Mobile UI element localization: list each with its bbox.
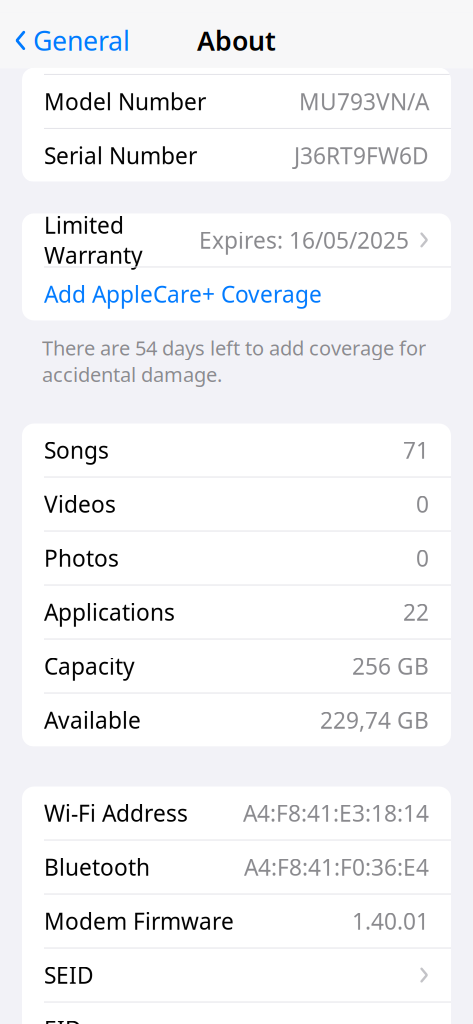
staticText: Serial Number [44,140,197,170]
button[interactable]: Limited Warranty [22,213,451,266]
staticText: General [33,23,130,58]
staticText: A4:F8:41:F0:36:E4 [244,852,429,882]
staticText: EID [44,1014,82,1024]
staticText: 0 [416,543,429,573]
staticText: SEID [44,960,94,990]
staticText: Modem Firmware [44,906,234,936]
staticText: There are 54 days left to add coverage f… [42,334,426,387]
staticText: Songs [44,435,109,465]
button[interactable]: General [0,14,140,67]
staticText: Wi-Fi Address [44,798,188,828]
staticText: MU793VN/A [299,86,429,116]
staticText: 22 [403,597,429,627]
button[interactable]: Add AppleCare+ Coverage [22,267,451,320]
staticText: 1.40.01 [352,906,429,936]
staticText: Capacity [44,651,135,681]
staticText: Add AppleCare+ Coverage [44,279,322,309]
staticText: Expires: 16/05/2025 [199,225,409,255]
staticText: About [197,23,276,58]
staticText: Model Number [44,86,206,116]
staticText: Photos [44,543,119,573]
staticText: Available [44,705,141,735]
staticText: J36RT9FW6D [294,140,429,170]
staticText: Bluetooth [44,852,150,882]
staticText: 71 [403,435,429,465]
staticText: 256 GB [352,651,429,681]
staticText: 229,74 GB [320,705,429,735]
button[interactable]: SEID [22,949,451,1002]
staticText: 0 [416,489,429,519]
staticText: Applications [44,597,175,627]
staticText: Videos [44,489,116,519]
staticText: A4:F8:41:E3:18:14 [243,798,429,828]
staticText: Limited Warranty [44,210,143,270]
